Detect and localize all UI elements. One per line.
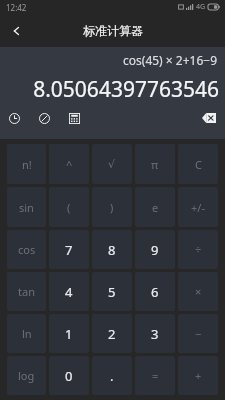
staticText: ( [67, 200, 71, 215]
staticText: log [18, 368, 35, 383]
staticText: tan [18, 284, 35, 299]
staticText: 8 [108, 241, 116, 259]
staticText: = [152, 368, 159, 383]
staticText: ) [110, 200, 114, 215]
staticText: − [195, 326, 202, 341]
button[interactable]: ^ [49, 144, 89, 184]
button[interactable]: π [135, 144, 175, 184]
button[interactable]: C [178, 144, 218, 184]
staticText: 4 [65, 283, 73, 301]
staticText: 4G [196, 2, 206, 12]
staticText: 6 [151, 283, 159, 301]
staticText: 标准计算器 [83, 23, 143, 38]
button[interactable]: = [135, 356, 175, 395]
button[interactable]: tan [7, 272, 46, 311]
staticText: 9 [151, 241, 159, 259]
button[interactable]: Backspace [199, 108, 219, 128]
staticText: ÷ [195, 242, 202, 257]
button[interactable]: Back [0, 14, 33, 47]
button[interactable]: ) [92, 187, 132, 227]
button[interactable]: 1 [49, 314, 89, 353]
staticText: e [152, 200, 159, 215]
button[interactable]: cos [7, 230, 46, 269]
button[interactable]: 5 [92, 272, 132, 311]
button[interactable]: e [135, 187, 175, 227]
button[interactable]: 2 [92, 314, 132, 353]
button[interactable]: History [4, 108, 24, 128]
staticText: n! [22, 157, 32, 172]
button[interactable]: n! [7, 144, 46, 184]
button[interactable]: √ [92, 144, 132, 184]
staticText: ln [22, 326, 32, 341]
button[interactable]: ln [7, 314, 46, 353]
button[interactable]: Keypad [64, 108, 84, 128]
staticText: 8.05064397763546 [0, 75, 219, 104]
staticText: C [195, 157, 202, 172]
button[interactable]: log [7, 356, 46, 395]
button[interactable]: . [92, 356, 132, 395]
staticText: 0 [65, 367, 73, 385]
staticText: ^ [66, 157, 73, 172]
staticText: 3 [151, 325, 159, 343]
button[interactable]: +/- [178, 187, 218, 227]
staticText: × [195, 284, 202, 299]
staticText: +/- [191, 200, 205, 215]
staticText: cos [18, 242, 36, 257]
staticText: . [110, 367, 114, 385]
button[interactable]: 3 [135, 314, 175, 353]
button[interactable]: + [178, 356, 218, 395]
button[interactable]: 0 [49, 356, 89, 395]
staticText: + [195, 368, 202, 383]
button[interactable]: ( [49, 187, 89, 227]
button[interactable]: 6 [135, 272, 175, 311]
button[interactable]: 8 [92, 230, 132, 269]
staticText: 7 [65, 241, 73, 259]
button[interactable]: sin [7, 187, 46, 227]
button[interactable]: Angle mode [34, 108, 54, 128]
staticText: 5 [108, 283, 116, 301]
button[interactable]: × [178, 272, 218, 311]
staticText: cos(45) × 2+16−9 [0, 52, 217, 68]
staticText: sin [19, 200, 34, 215]
button[interactable]: ÷ [178, 230, 218, 269]
button[interactable]: 7 [49, 230, 89, 269]
staticText: 2 [108, 325, 116, 343]
staticText: 12:42 [6, 2, 27, 13]
staticText: 1 [65, 325, 73, 343]
staticText: √ [108, 158, 116, 171]
staticText: π [151, 157, 159, 172]
button[interactable]: 4 [49, 272, 89, 311]
button[interactable]: 9 [135, 230, 175, 269]
